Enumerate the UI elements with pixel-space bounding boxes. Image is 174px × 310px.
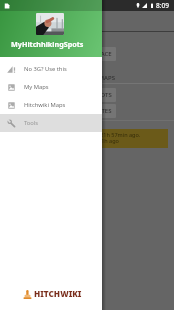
staticText: MY MAPS — [88, 74, 115, 82]
staticText: HITCHWIKI — [34, 288, 82, 299]
button[interactable]: MY ROUTES — [74, 104, 116, 118]
staticText: MY ROUTES — [78, 107, 112, 115]
button[interactable]: MY SPOTS — [79, 88, 116, 102]
staticText: Arrived 21h 57min ago. Waiting 1h ago — [80, 131, 141, 145]
staticText: No 3G? Use this — [24, 65, 67, 73]
staticText: SAVE NEW PLACE — [63, 50, 112, 58]
button[interactable]: MY MAPS — [83, 71, 120, 85]
button[interactable]: Tools — [0, 114, 102, 132]
button[interactable]: SAVE NEW PLACE — [59, 47, 116, 61]
button[interactable]: No 3G? Use this — [0, 60, 102, 78]
staticText: My Maps — [24, 83, 49, 91]
staticText: MyHitchhikingSpots — [11, 39, 84, 49]
other: Notification — [4, 3, 10, 9]
staticText: 8:09 — [156, 1, 169, 10]
staticText: Hitchwiki Maps — [24, 101, 66, 109]
button[interactable]: Hitchwiki Maps — [0, 96, 102, 114]
staticText: MY SPOTS — [83, 91, 112, 99]
staticText: Tools — [24, 119, 39, 127]
button[interactable]: HITCHWIKI — [23, 288, 102, 299]
button[interactable]: My Maps — [0, 78, 102, 96]
